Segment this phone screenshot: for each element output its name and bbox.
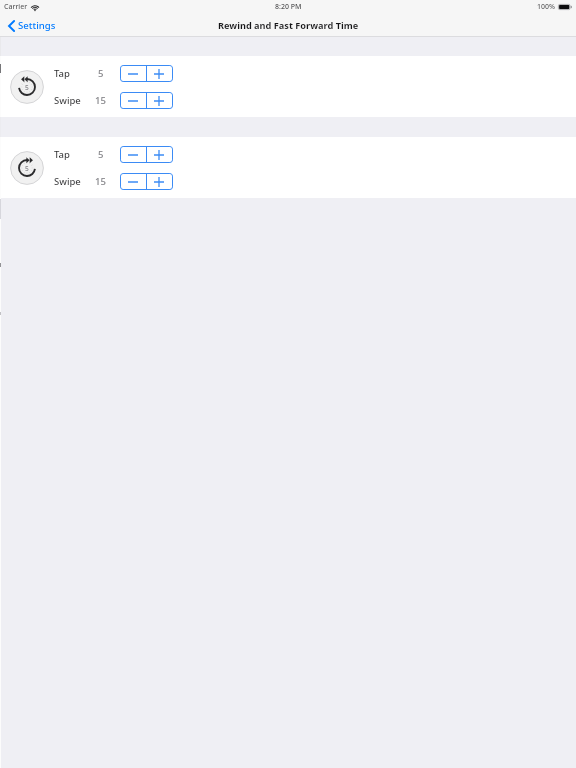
button[interactable]: Settings xyxy=(0,16,65,35)
button[interactable]: Decrease xyxy=(120,173,146,190)
button[interactable]: Increase xyxy=(146,92,172,109)
staticText: 15 xyxy=(95,94,106,107)
other: Rewind 5 seconds xyxy=(10,70,44,104)
staticText: Tap xyxy=(54,67,70,80)
staticText: 8:20 PM xyxy=(275,2,302,12)
staticText: Rewind and Fast Forward Time xyxy=(218,19,359,32)
staticText: 15 xyxy=(95,175,106,188)
other: Fast forward 5 seconds xyxy=(10,151,44,185)
button[interactable]: Decrease xyxy=(120,92,146,109)
staticText: Swipe xyxy=(54,94,81,107)
staticText: Settings xyxy=(18,19,56,32)
staticText: Swipe xyxy=(54,175,81,188)
button[interactable]: Increase xyxy=(146,173,172,190)
staticText: 5 xyxy=(25,164,29,173)
staticText: Carrier xyxy=(4,2,28,12)
button[interactable]: Tap xyxy=(0,60,576,87)
button[interactable]: Decrease xyxy=(120,146,146,163)
button[interactable]: Swipe xyxy=(0,87,576,114)
staticText: 5 xyxy=(98,67,104,80)
button[interactable]: Increase xyxy=(146,65,172,82)
staticText: 5 xyxy=(25,83,29,92)
staticText: 100% xyxy=(537,2,555,12)
button[interactable]: Swipe xyxy=(0,168,576,195)
button[interactable]: Tap xyxy=(0,141,576,168)
staticText: 5 xyxy=(98,148,104,161)
staticText: Tap xyxy=(54,148,70,161)
button[interactable]: Decrease xyxy=(120,65,146,82)
button[interactable]: Increase xyxy=(146,146,172,163)
